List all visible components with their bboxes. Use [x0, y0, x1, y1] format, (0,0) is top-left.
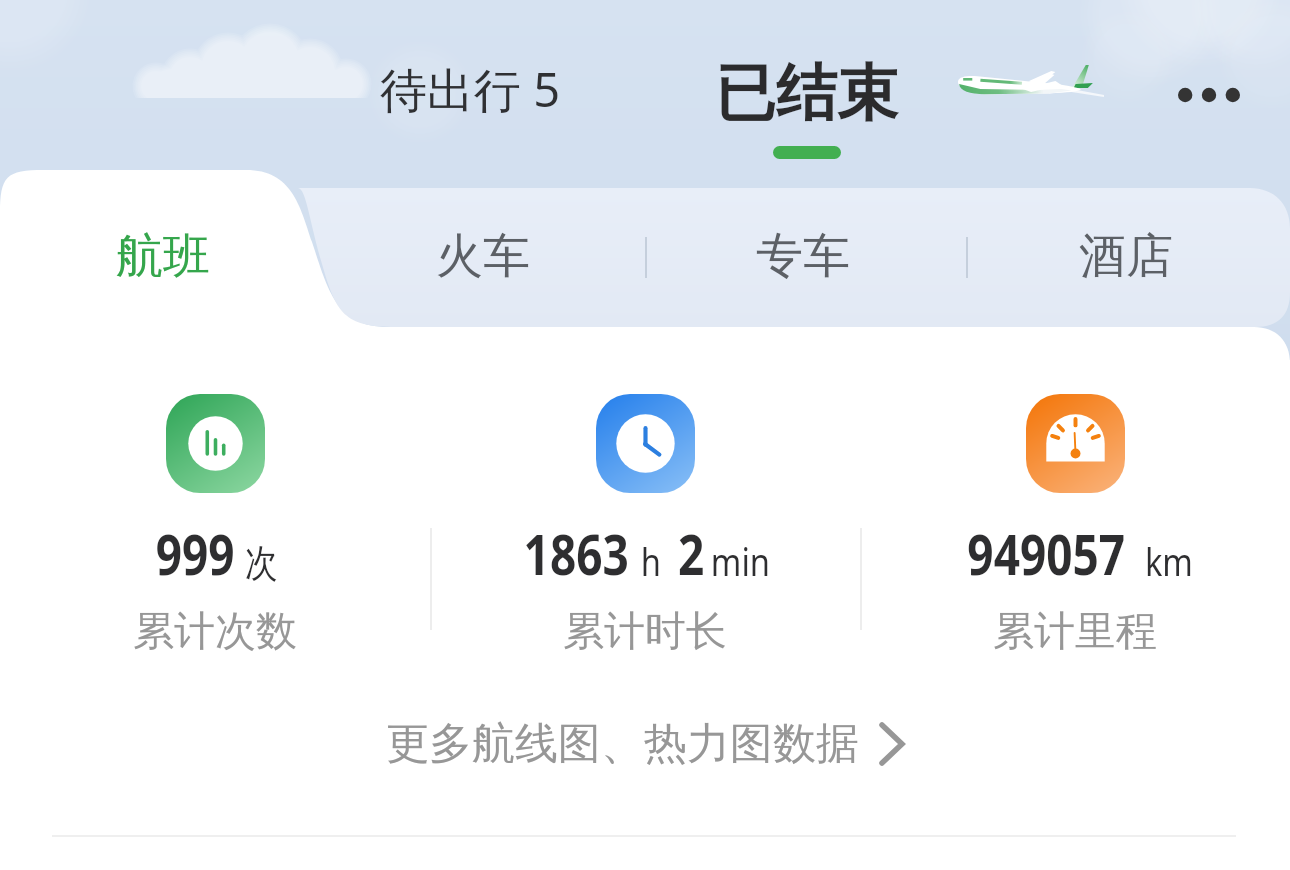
staticText: 航班: [116, 227, 210, 286]
staticText: min: [711, 535, 770, 587]
button[interactable]: 已结束: [705, 55, 908, 159]
staticText: 酒店: [1079, 227, 1173, 286]
staticText: km: [1145, 535, 1193, 587]
staticText: 1863: [524, 515, 629, 591]
staticText: 已结束: [715, 55, 898, 132]
button[interactable]: 1863: [430, 394, 860, 658]
staticText: 火车: [436, 227, 530, 286]
button[interactable]: 酒店: [1040, 208, 1212, 304]
staticText: 999: [156, 515, 235, 591]
staticText: 次: [245, 539, 277, 587]
button[interactable]: 航班: [57, 208, 269, 304]
staticText: 专车: [756, 227, 850, 286]
staticText: 累计里程: [993, 606, 1157, 658]
button[interactable]: 火车: [397, 208, 569, 304]
staticText: h: [641, 535, 661, 587]
staticText: 949057: [967, 515, 1126, 591]
staticText: 累计时长: [563, 606, 727, 658]
staticText: 待出行 5: [380, 57, 561, 121]
button[interactable]: 专车: [717, 208, 889, 304]
button[interactable]: 949057: [860, 394, 1290, 658]
button[interactable]: 更多航线图、热力图数据: [0, 700, 1290, 788]
button[interactable]: 待出行 5: [370, 51, 571, 127]
staticText: 2: [678, 515, 705, 591]
staticText: 更多航线图、热力图数据: [386, 717, 859, 771]
button[interactable]: 999: [0, 394, 430, 658]
button[interactable]: More options: [1152, 59, 1266, 131]
staticText: 累计次数: [133, 606, 297, 658]
